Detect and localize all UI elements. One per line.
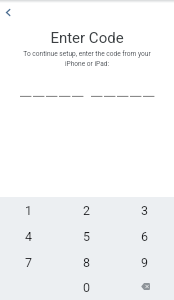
staticText: 3 xyxy=(141,203,149,218)
button[interactable]: 9 xyxy=(116,248,174,274)
button[interactable]: Back xyxy=(0,4,16,20)
staticText: 5 xyxy=(83,229,91,244)
button[interactable]: Backspace xyxy=(116,274,174,300)
button[interactable]: 4 xyxy=(0,222,58,248)
staticText: 6 xyxy=(141,229,149,244)
staticText: 4 xyxy=(25,229,33,244)
button[interactable]: 8 xyxy=(58,248,116,274)
button[interactable]: 1 xyxy=(0,197,58,222)
button[interactable]: 7 xyxy=(0,248,58,274)
staticText: 8 xyxy=(83,255,91,270)
button[interactable]: 5 xyxy=(58,222,116,248)
button[interactable]: 2 xyxy=(58,197,116,222)
button[interactable]: 0 xyxy=(58,274,116,300)
staticText: To continue setup, enter the code from y… xyxy=(14,50,160,67)
staticText: 1 xyxy=(25,203,33,218)
staticText: 9 xyxy=(141,255,149,270)
staticText: Enter Code xyxy=(0,29,174,47)
button[interactable]: 3 xyxy=(116,197,174,222)
staticText: 2 xyxy=(83,203,91,218)
staticText: 0 xyxy=(83,280,91,295)
button[interactable]: 6 xyxy=(116,222,174,248)
staticText: 7 xyxy=(25,255,33,270)
